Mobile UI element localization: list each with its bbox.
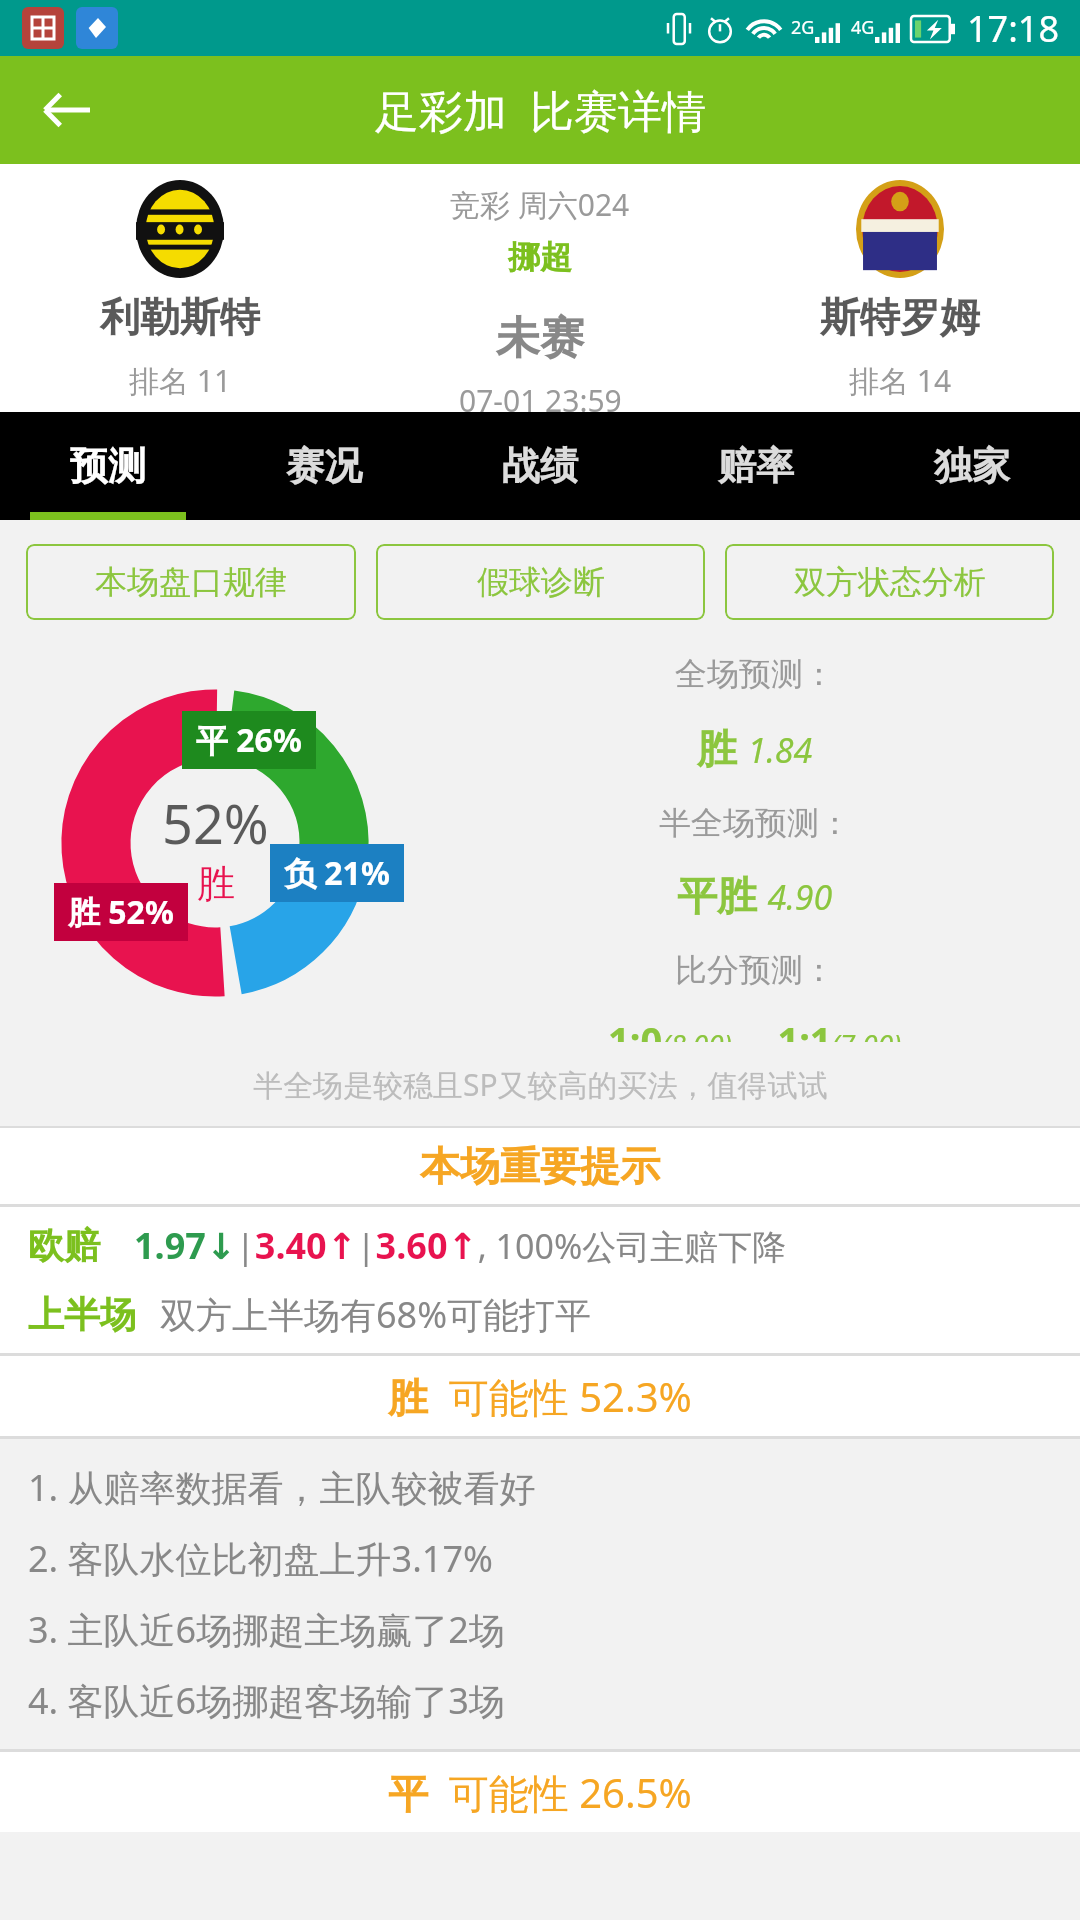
staticText: 利勒斯特 (100, 292, 260, 342)
staticText: 预测 (70, 442, 146, 490)
button[interactable]: 赛况 (216, 412, 432, 520)
staticText: 挪超 (508, 237, 572, 277)
staticText: 1.97↓|3.40↑|3.60↑, 100%公司主赔下降 (134, 1221, 787, 1270)
staticText: 17:18 (967, 4, 1060, 53)
staticText: 平 26% (196, 718, 302, 762)
staticText: 半全场预测： (659, 803, 851, 843)
staticText: 未赛 (496, 311, 584, 366)
staticText: 本场盘口规律 (95, 562, 287, 602)
staticText: 斯特罗姆 (820, 292, 980, 342)
button[interactable]: 本场盘口规律 (26, 544, 356, 620)
staticText: 上半场 (28, 1292, 136, 1337)
button[interactable]: 赔率 (648, 412, 864, 520)
staticText: 全场预测： (675, 654, 835, 694)
staticText: 平 可能性 26.5% (388, 1765, 692, 1820)
button[interactable]: 双方状态分析 (725, 544, 1054, 620)
staticText: 1:0(8.00) 、 1:1(7.00) (608, 1014, 902, 1042)
staticText: 本场重要提示 (420, 1141, 660, 1191)
staticText: 胜 可能性 52.3% (388, 1369, 692, 1424)
button[interactable]: 独家 (864, 412, 1080, 520)
staticText: 胜 1.84 (697, 720, 813, 775)
staticText: 独家 (934, 442, 1010, 490)
staticText: 1. 从赔率数据看，主队较被看好 (28, 1463, 536, 1512)
staticText: 半全场是较稳且SP又较高的买法，值得试试 (253, 1064, 828, 1105)
staticText: 平胜 4.90 (677, 867, 833, 922)
staticText: 假球诊断 (477, 562, 605, 602)
staticText: 52% (162, 786, 269, 860)
staticText: 足彩加 比赛详情 (375, 80, 706, 140)
button[interactable]: Back (28, 72, 104, 148)
staticText: 竞彩 周六024 (450, 184, 630, 225)
button[interactable]: 假球诊断 (376, 544, 705, 620)
button[interactable]: 预测 (0, 412, 216, 520)
staticText: 赔率 (718, 442, 794, 490)
staticText: 2G (791, 15, 815, 40)
staticText: 07-01 23:59 (459, 380, 622, 412)
staticText: 负 21% (284, 851, 390, 895)
staticText: 赛况 (286, 442, 362, 490)
staticText: 排名 14 (849, 360, 952, 401)
staticText: 欧赔 (28, 1223, 100, 1268)
staticText: 4G (851, 15, 875, 40)
staticText: 战绩 (502, 442, 578, 490)
staticText: 2. 客队水位比初盘上升3.17% (28, 1534, 493, 1583)
button[interactable]: 战绩 (432, 412, 648, 520)
staticText: 3. 主队近6场挪超主场赢了2场 (28, 1605, 505, 1654)
staticText: 比分预测： (675, 950, 835, 990)
staticText: 双方状态分析 (794, 562, 986, 602)
staticText: 胜 (197, 860, 235, 908)
staticText: 双方上半场有68%可能打平 (160, 1290, 592, 1339)
staticText: 排名 11 (129, 360, 232, 401)
staticText: 4. 客队近6场挪超客场输了3场 (28, 1676, 505, 1725)
staticText: 胜 52% (68, 890, 174, 934)
